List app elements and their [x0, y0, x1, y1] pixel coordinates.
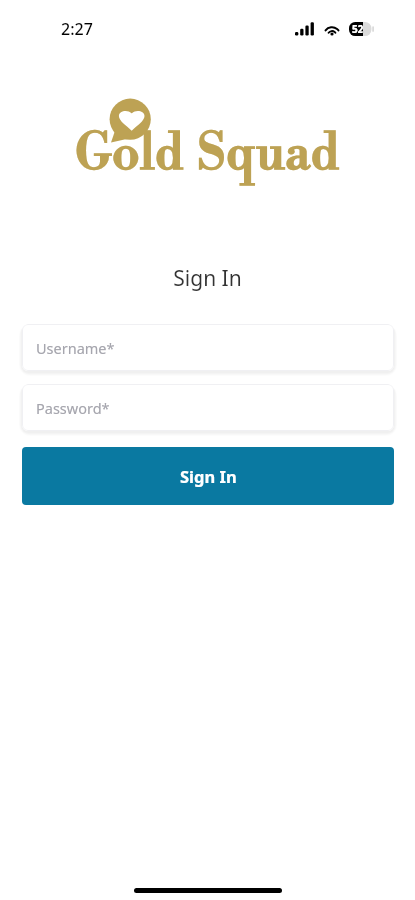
button[interactable]: Password* — [22, 384, 394, 431]
staticText: Gold — [75, 123, 184, 186]
staticText: 52 — [352, 22, 364, 36]
staticText: Username* — [36, 338, 115, 358]
other: Wi-Fi — [324, 21, 341, 36]
button[interactable]: Sign In — [22, 447, 394, 505]
staticText: Sign In — [180, 465, 237, 487]
staticText: 2:27 — [61, 18, 93, 40]
other: Cellular signal — [294, 21, 316, 36]
button[interactable]: Username* — [22, 324, 394, 371]
staticText: Password* — [36, 398, 110, 418]
staticText: 52 — [352, 22, 363, 36]
staticText: Sign In — [0, 264, 415, 293]
staticText: Squad — [197, 123, 339, 186]
